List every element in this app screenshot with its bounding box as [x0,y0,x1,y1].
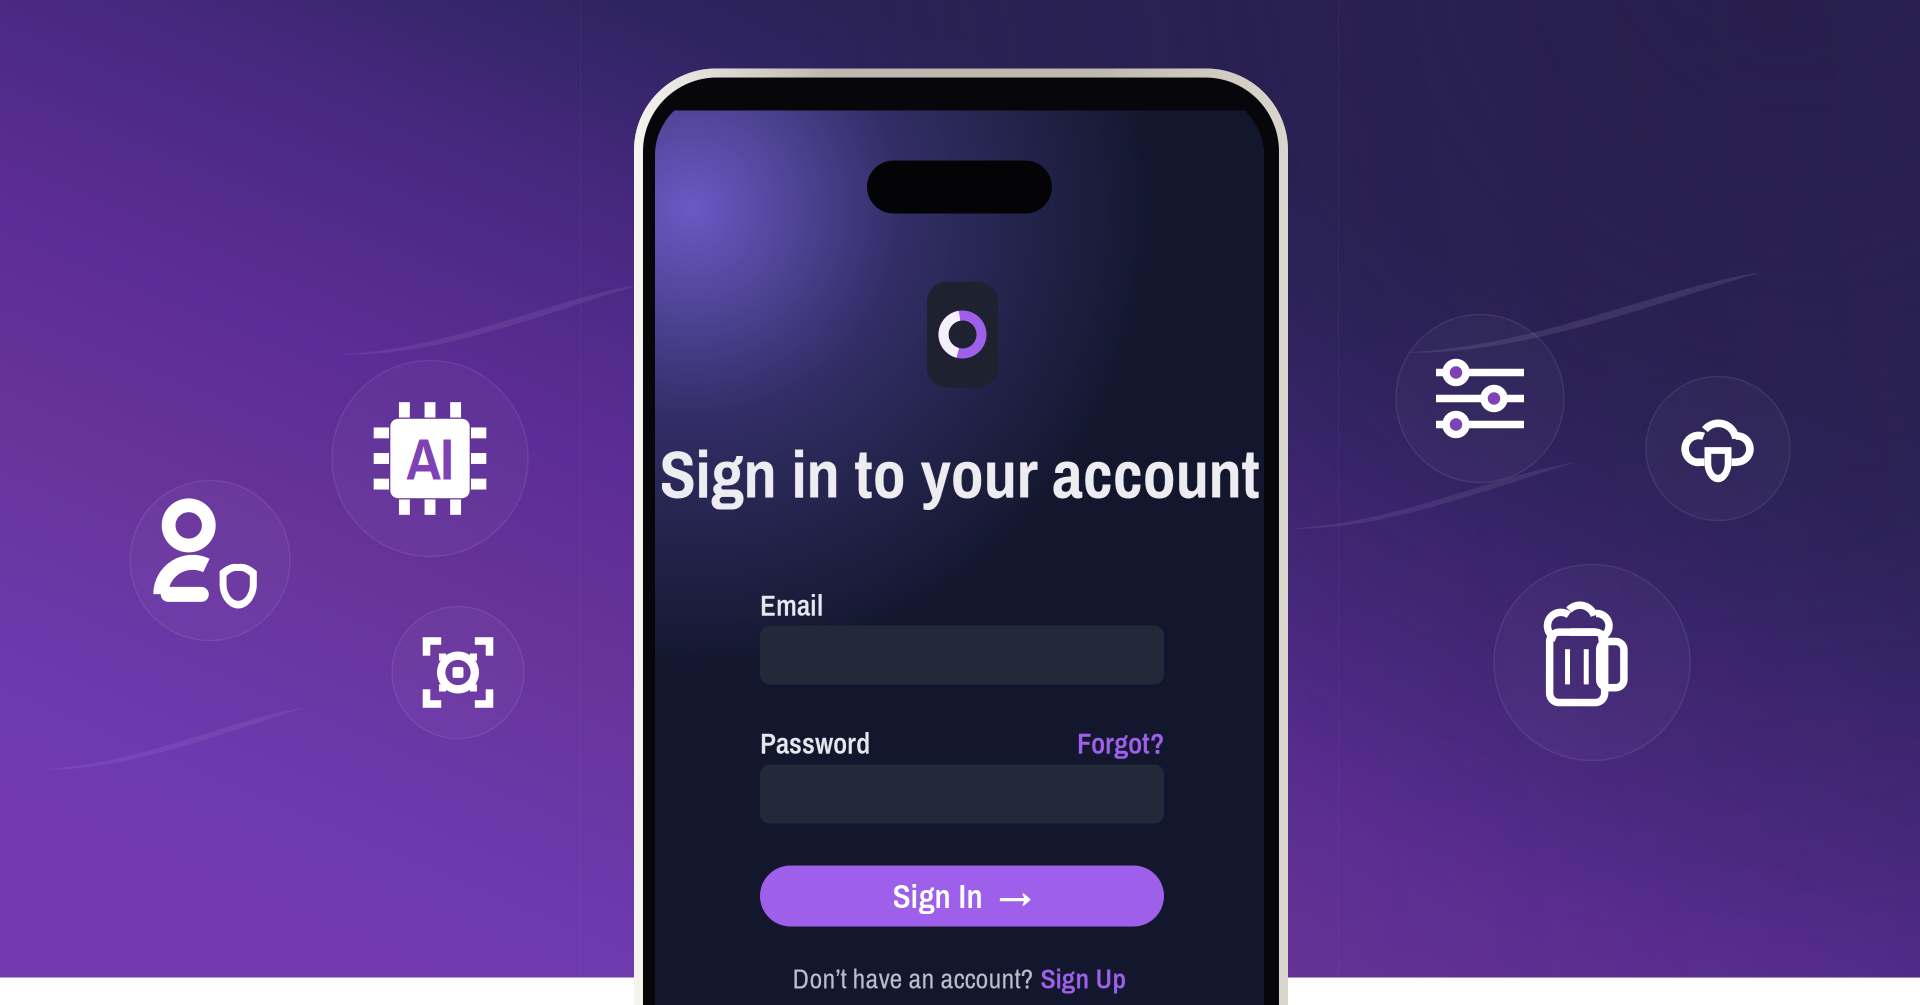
button[interactable]: Sign Up [1040,959,1126,997]
staticText: Forgot? [1077,723,1164,763]
staticText: Sign in to your account [659,428,1259,518]
staticText: Password [760,723,870,763]
button[interactable]: Sign In → [760,865,1164,926]
staticText: AI [406,419,453,498]
staticText: Email [760,585,823,625]
button[interactable]: Forgot? [1054,723,1164,763]
staticText: Sign Up [1040,959,1126,997]
staticText: Sign In → [892,874,1031,918]
staticText: Don’t have an account? [792,959,1033,997]
